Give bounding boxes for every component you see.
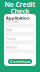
staticText: Check (10, 7, 29, 16)
button[interactable]: Continue (8, 59, 32, 64)
staticText: Email (6, 28, 12, 32)
staticText: Phone (6, 37, 16, 41)
staticText: Full name (6, 20, 19, 23)
staticText: No Credit (4, 0, 35, 9)
staticText: Application (6, 15, 30, 21)
staticText: Amount (6, 46, 17, 49)
staticText: Continue (10, 59, 30, 64)
